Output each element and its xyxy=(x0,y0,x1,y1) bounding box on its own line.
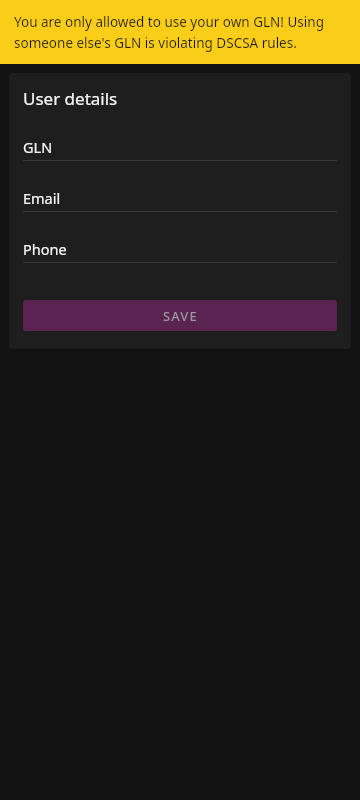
staticText: GLN xyxy=(23,137,53,157)
button[interactable]: You are only allowed to use your own GLN… xyxy=(0,0,360,64)
staticText: Phone xyxy=(23,239,67,259)
staticText: Email xyxy=(23,188,61,208)
button[interactable]: GLN xyxy=(23,134,337,185)
staticText: You are only allowed to use your own GLN… xyxy=(14,13,346,52)
button[interactable]: Phone xyxy=(23,236,337,287)
button[interactable]: SAVE xyxy=(23,300,337,331)
staticText: SAVE xyxy=(163,307,198,325)
staticText: User details xyxy=(23,87,118,110)
button[interactable]: Email xyxy=(23,185,337,236)
